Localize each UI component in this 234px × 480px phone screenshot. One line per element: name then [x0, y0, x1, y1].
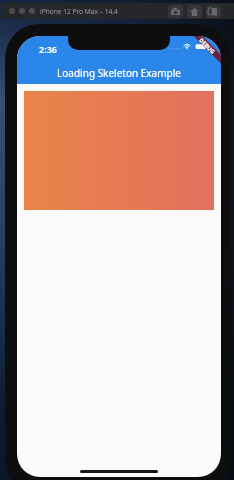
button[interactable]: Rotate — [206, 5, 221, 18]
button[interactable]: 2:36 — [17, 36, 221, 84]
staticText: iPhone 12 Pro Max – 14.4 — [40, 7, 118, 16]
staticText: Loading Skeleton Example — [17, 66, 221, 80]
button[interactable]: Screenshot — [168, 5, 183, 18]
staticText: 2:36 — [39, 43, 57, 55]
staticText: DEBUG — [197, 36, 217, 56]
button[interactable]: Home — [187, 5, 202, 18]
